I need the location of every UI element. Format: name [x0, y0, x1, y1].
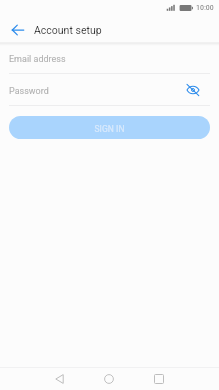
staticText: Email address	[9, 54, 66, 65]
staticText: Account setup	[34, 24, 102, 36]
button[interactable]: Show password	[182, 79, 204, 101]
button[interactable]: Email address	[9, 42, 210, 73]
staticText: 10:00	[196, 3, 214, 12]
button[interactable]: Back	[6, 18, 30, 42]
button[interactable]: SIGN IN	[9, 116, 210, 139]
staticText: Password	[9, 86, 49, 97]
button[interactable]: Password	[9, 74, 210, 105]
staticText: SIGN IN	[94, 124, 125, 134]
button[interactable]: Back	[49, 368, 71, 390]
button[interactable]: Home	[98, 368, 120, 390]
button[interactable]: Recent apps	[148, 368, 170, 390]
